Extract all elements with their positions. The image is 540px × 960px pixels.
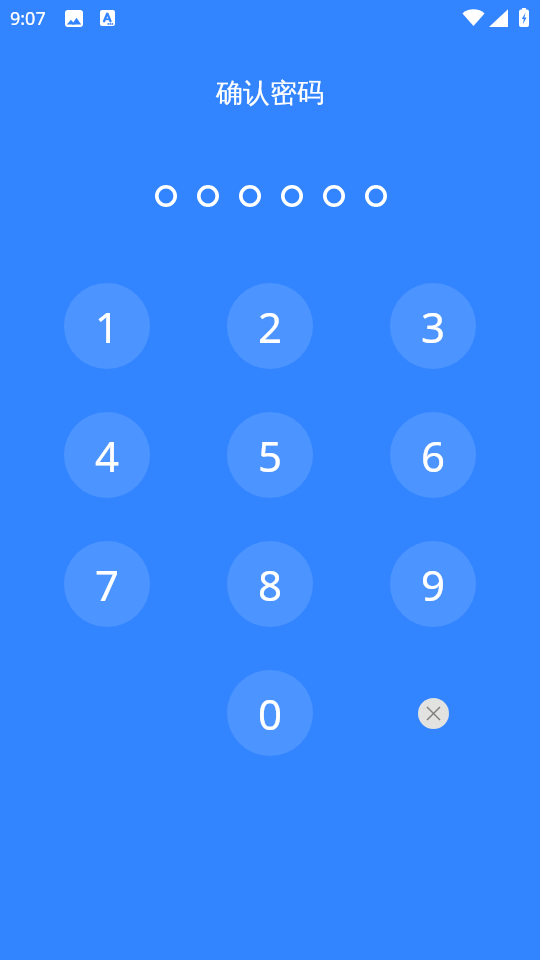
staticText: 8 [258, 556, 283, 613]
button[interactable]: 3 [390, 283, 476, 369]
staticText: 9:07 [10, 6, 46, 31]
staticText: 5 [258, 427, 283, 484]
button[interactable]: 5 [227, 412, 313, 498]
button[interactable]: 7 [64, 541, 150, 627]
button[interactable]: 6 [390, 412, 476, 498]
staticText: 3 [421, 298, 446, 355]
button[interactable]: 4 [64, 412, 150, 498]
button[interactable]: 0 [227, 670, 313, 756]
button[interactable]: Delete [390, 670, 476, 756]
staticText: 0 [258, 685, 283, 742]
staticText: 6 [421, 427, 446, 484]
staticText: 2 [258, 298, 283, 355]
button[interactable]: 8 [227, 541, 313, 627]
button[interactable]: 2 [227, 283, 313, 369]
staticText: 确认密码 [0, 76, 540, 110]
staticText: 9 [421, 556, 446, 613]
staticText: 1 [95, 298, 120, 355]
staticText: 4 [95, 427, 120, 484]
button[interactable]: 1 [64, 283, 150, 369]
staticText: 7 [95, 556, 120, 613]
button[interactable]: 9 [390, 541, 476, 627]
